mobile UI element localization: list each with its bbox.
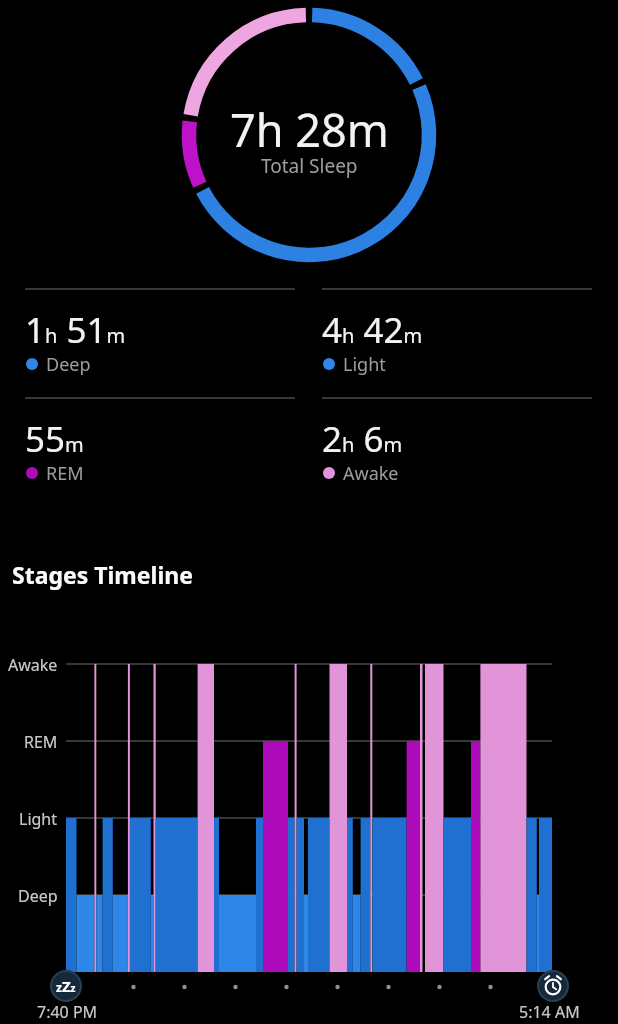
staticText: Deep (46, 352, 91, 377)
staticText: 1h 51m (25, 306, 126, 354)
button[interactable] (322, 296, 592, 388)
staticText: 7:40 PM (37, 1001, 98, 1023)
button[interactable] (25, 405, 295, 497)
button[interactable] (537, 970, 569, 1002)
staticText: 2h 6m (322, 415, 403, 463)
staticText: Awake (8, 654, 58, 676)
staticText: Light (19, 808, 58, 830)
staticText: Total Sleep (261, 153, 358, 179)
staticText: 55m (25, 415, 84, 463)
staticText: Deep (18, 885, 58, 907)
staticText: Awake (343, 461, 399, 486)
button[interactable]: zZz (50, 970, 82, 1002)
staticText: 7h 28m (230, 99, 389, 160)
staticText: Stages Timeline (12, 559, 193, 590)
staticText: 4h 42m (322, 306, 423, 354)
staticText: Light (343, 352, 386, 377)
staticText: zZz (56, 976, 76, 996)
staticText: REM (46, 461, 84, 486)
staticText: 5:14 AM (519, 1001, 580, 1023)
button[interactable] (25, 296, 295, 388)
staticText: REM (24, 731, 58, 753)
button[interactable] (322, 405, 592, 497)
